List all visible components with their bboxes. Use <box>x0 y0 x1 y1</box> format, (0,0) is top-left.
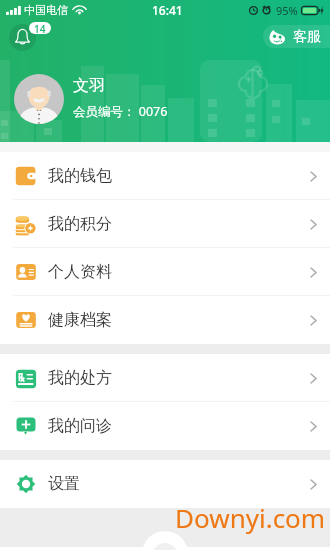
button[interactable]: 健康档案 <box>0 296 330 344</box>
staticText: 95% <box>276 3 298 18</box>
staticText: 14 <box>34 22 46 34</box>
staticText: 设置 <box>48 474 80 494</box>
button[interactable]: 我的问诊 <box>0 402 330 450</box>
staticText: 客服 <box>293 28 321 46</box>
staticText: Downyi.com <box>175 500 326 535</box>
button[interactable]: Consult <box>132 538 198 550</box>
staticText: 我的钱包 <box>48 166 112 186</box>
button[interactable]: 个人资料 <box>0 248 330 296</box>
staticText: 我的处方 <box>48 368 112 388</box>
staticText: 16:41 <box>152 2 183 18</box>
button[interactable]: 我的钱包 <box>0 152 330 200</box>
button[interactable]: 客服 <box>263 25 330 48</box>
staticText: 我的积分 <box>48 214 112 234</box>
button[interactable]: 设置 <box>0 460 330 508</box>
button[interactable]: Mine <box>264 538 330 550</box>
staticText: 健康档案 <box>48 310 112 330</box>
staticText: 中国电信 <box>24 3 68 17</box>
staticText: 文羽 <box>73 76 105 96</box>
staticText: 会员编号： 0076 <box>73 103 168 120</box>
staticText: 我的问诊 <box>48 416 112 436</box>
button[interactable]: 我的积分 <box>0 200 330 248</box>
button[interactable]: Health <box>66 538 132 550</box>
staticText: 个人资料 <box>48 262 112 282</box>
button[interactable]: 我的处方 <box>0 354 330 402</box>
button[interactable]: Store <box>198 538 264 550</box>
button[interactable]: Home <box>0 538 66 550</box>
button[interactable]: Notifications <box>9 24 36 51</box>
